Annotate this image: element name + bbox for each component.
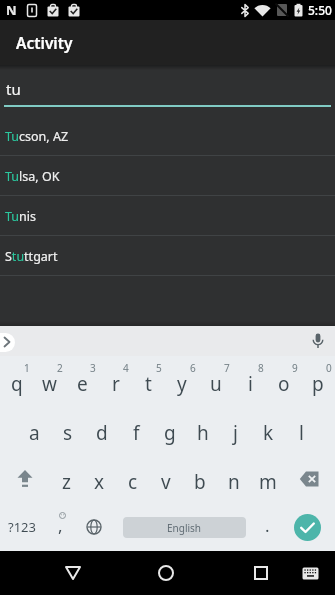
staticText: 6 <box>190 361 196 375</box>
button[interactable] <box>144 551 188 595</box>
button[interactable]: m <box>251 454 285 503</box>
button[interactable] <box>285 454 335 503</box>
button[interactable] <box>77 503 110 551</box>
button[interactable]: l <box>285 405 318 454</box>
button[interactable]: y <box>165 356 199 405</box>
button[interactable]: g <box>153 405 186 454</box>
staticText: m <box>259 469 277 495</box>
button[interactable]: Stuttgart <box>0 236 335 276</box>
staticText: d <box>96 420 108 446</box>
button[interactable] <box>0 454 50 503</box>
staticText: x <box>94 469 105 495</box>
staticText: r <box>112 371 120 397</box>
button[interactable]: English <box>110 503 250 551</box>
staticText: y <box>177 371 187 397</box>
staticText: g <box>164 420 176 446</box>
button[interactable]: Tucson, AZ <box>0 116 335 156</box>
button[interactable]: e <box>66 356 99 405</box>
staticText: 3 <box>90 361 96 375</box>
staticText: e <box>77 371 88 397</box>
button[interactable]: t <box>132 356 165 405</box>
staticText: Tunis <box>5 208 36 225</box>
button[interactable]: h <box>186 405 219 454</box>
staticText: i <box>248 371 253 397</box>
staticText: . <box>265 514 270 537</box>
staticText: z <box>62 469 71 495</box>
button[interactable]: q <box>0 356 33 405</box>
staticText: English <box>167 521 202 535</box>
staticText: o <box>278 371 290 397</box>
button[interactable]: , <box>44 503 77 551</box>
staticText: n <box>228 469 240 495</box>
button[interactable]: z <box>50 454 83 503</box>
staticText: Tulsa, OK <box>5 168 60 185</box>
button[interactable]: o <box>267 356 301 405</box>
button[interactable] <box>51 551 95 595</box>
staticText: Stuttgart <box>5 248 58 265</box>
button[interactable]: a <box>17 405 51 454</box>
staticText: 4 <box>123 361 129 375</box>
button[interactable]: p <box>301 356 335 405</box>
button[interactable]: f <box>119 405 153 454</box>
staticText: ?123 <box>8 518 36 536</box>
staticText: 2 <box>57 361 63 375</box>
button[interactable]: d <box>85 405 119 454</box>
staticText: tu <box>6 79 21 99</box>
staticText: 5 <box>156 361 162 375</box>
button[interactable]: c <box>116 454 149 503</box>
button[interactable]: x <box>83 454 116 503</box>
button[interactable]: Tunis <box>0 196 335 236</box>
button[interactable] <box>239 551 283 595</box>
staticText: 7 <box>224 361 230 375</box>
button[interactable]: u <box>199 356 233 405</box>
button[interactable]: j <box>219 405 252 454</box>
staticText: j <box>233 420 238 446</box>
staticText: Tucson, AZ <box>5 128 69 145</box>
button[interactable]: k <box>252 405 285 454</box>
staticText: Activity <box>16 32 73 53</box>
staticText: b <box>194 469 206 495</box>
staticText: 0 <box>326 361 332 375</box>
staticText: s <box>63 420 73 446</box>
staticText: 9 <box>292 361 298 375</box>
staticText: q <box>11 371 23 397</box>
button[interactable]: s <box>51 405 85 454</box>
staticText: p <box>312 371 324 397</box>
staticText: w <box>42 371 57 397</box>
staticText: c <box>128 469 138 495</box>
button[interactable] <box>294 551 326 595</box>
staticText: k <box>263 420 274 446</box>
staticText: t <box>145 371 152 397</box>
staticText: , <box>58 514 63 537</box>
button[interactable]: . <box>250 503 284 551</box>
button[interactable]: v <box>149 454 183 503</box>
staticText: 5:50 <box>308 2 332 18</box>
button[interactable]: i <box>233 356 267 405</box>
staticText: 8 <box>258 361 264 375</box>
button[interactable]: r <box>99 356 132 405</box>
staticText: h <box>197 420 209 446</box>
button[interactable]: w <box>33 356 66 405</box>
staticText: 1 <box>24 361 30 375</box>
staticText: v <box>161 469 171 495</box>
button[interactable]: Tulsa, OK <box>0 156 335 196</box>
staticText: a <box>29 420 40 446</box>
button[interactable]: n <box>217 454 251 503</box>
staticText: N <box>6 1 17 19</box>
button[interactable]: ?123 <box>0 503 44 551</box>
button[interactable] <box>0 326 26 356</box>
button[interactable] <box>284 503 335 551</box>
button[interactable] <box>301 326 335 356</box>
staticText: f <box>133 420 140 446</box>
staticText: u <box>210 371 222 397</box>
staticText: l <box>299 420 304 446</box>
button[interactable]: b <box>183 454 217 503</box>
